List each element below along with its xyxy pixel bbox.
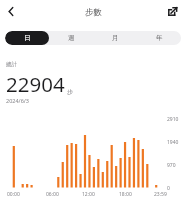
staticText: 970 — [167, 162, 176, 169]
button[interactable]: Share — [168, 7, 177, 16]
staticText: 06:00 — [46, 191, 59, 198]
staticText: 週 — [68, 34, 75, 42]
button[interactable]: 日 — [5, 31, 49, 45]
staticText: 步 — [67, 88, 73, 96]
staticText: 00:00 — [7, 191, 20, 198]
staticText: 22904 — [6, 70, 65, 98]
staticText: 年 — [156, 34, 163, 42]
staticText: 日 — [24, 34, 31, 42]
button[interactable]: Back — [3, 4, 18, 19]
staticText: 0 — [167, 185, 170, 192]
button[interactable]: 週 — [49, 31, 93, 45]
staticText: 2910 — [167, 116, 179, 123]
button[interactable]: 月 — [93, 31, 137, 45]
staticText: 23:59 — [154, 191, 167, 198]
staticText: 1940 — [167, 139, 179, 146]
button[interactable]: 年 — [137, 31, 181, 45]
staticText: 總計 — [6, 61, 17, 68]
staticText: 步數 — [85, 7, 102, 18]
staticText: 2024/6/3 — [6, 97, 29, 104]
staticText: 12:00 — [82, 191, 95, 198]
staticText: 18:00 — [119, 191, 132, 198]
staticText: 月 — [112, 34, 119, 42]
